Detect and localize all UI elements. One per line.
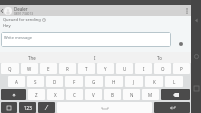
button[interactable]: O [154,63,171,74]
staticText: R [66,66,69,72]
button[interactable]: W [21,63,38,74]
button[interactable]: Emoji [1,102,17,113]
staticText: L [173,79,176,85]
button[interactable]: L [165,76,183,87]
button[interactable]: I [63,52,127,63]
button[interactable]: Back [191,0,201,40]
staticText: D [53,79,57,85]
staticText: Z [35,92,38,98]
button[interactable]: Back [0,5,4,16]
button[interactable]: More options [182,5,191,16]
staticText: I [143,66,145,72]
staticText: M [148,92,153,98]
button[interactable]: K [145,76,163,87]
button[interactable]: Enter [154,102,190,113]
button[interactable]: Recent apps [191,72,201,104]
button[interactable]: N [123,89,140,100]
staticText: Write message [4,35,32,40]
staticText: O [161,66,165,72]
button[interactable]: 123 [19,102,36,113]
button[interactable]: J [125,76,143,87]
staticText: G [92,79,96,85]
staticText: W [27,66,32,72]
button[interactable]: Shift [1,89,26,100]
staticText: B [111,92,114,98]
staticText: V [92,92,95,98]
button[interactable]: Home [191,40,201,72]
staticText: H [112,79,116,85]
staticText: Y [104,66,107,72]
staticText: U [123,66,127,72]
button[interactable] [57,102,152,113]
button[interactable]: To [127,52,191,63]
button[interactable]: R [59,63,76,74]
button[interactable]: The [0,52,63,63]
button[interactable]: S [27,76,44,87]
staticText: P [180,66,183,72]
staticText: 123 [24,105,32,111]
button[interactable]: B [104,89,121,100]
button[interactable]: Send [176,39,185,48]
button[interactable]: A [8,76,25,87]
staticText: K [153,79,156,85]
button[interactable]: U [116,63,133,74]
staticText: C [73,92,76,98]
button[interactable]: T [78,63,95,74]
staticText: E [47,66,50,72]
button[interactable]: E [40,63,57,74]
button[interactable]: C [66,89,83,100]
staticText: Dealer [14,6,28,12]
staticText: T [85,66,88,72]
button[interactable]: M [142,89,159,100]
button[interactable]: D [46,76,63,87]
staticText: J [133,79,135,85]
button[interactable]: G [85,76,103,87]
staticText: N [130,92,134,98]
staticText: Q [8,66,12,72]
button[interactable]: Y [97,63,114,74]
staticText: I [94,55,96,61]
button[interactable]: Backspace [161,89,190,100]
staticText: X [54,92,57,98]
button[interactable]: P [173,63,190,74]
button[interactable]: Slash [38,102,55,113]
button[interactable]: Q [1,63,19,74]
staticText: S [34,79,37,85]
button[interactable]: H [105,76,123,87]
staticText: A [15,79,18,85]
button[interactable]: V [85,89,102,100]
staticText: Queued for sending [3,17,41,22]
staticText: Hey [3,23,11,29]
button[interactable]: X [47,89,64,100]
staticText: 0891 734013 [14,12,34,16]
staticText: F [73,79,76,85]
button[interactable]: Z [28,89,45,100]
button[interactable]: F [65,76,83,87]
button[interactable]: I [135,63,152,74]
staticText: The [28,55,36,61]
staticText: To [157,55,162,61]
button[interactable]: Write message [1,32,171,47]
